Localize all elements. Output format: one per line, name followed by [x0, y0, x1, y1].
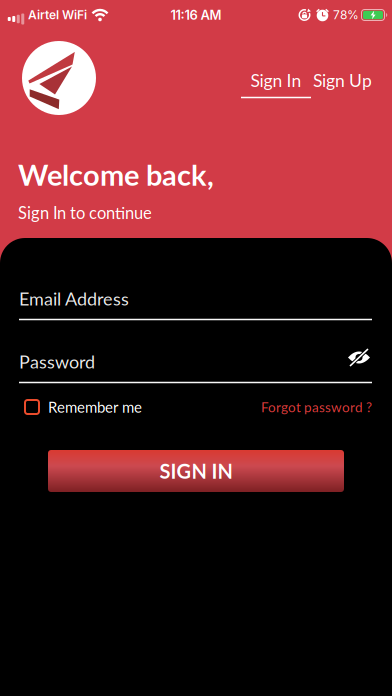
staticText: Sign In: [250, 70, 301, 91]
staticText: Sign In to continue: [18, 203, 152, 222]
staticText: 78%: [333, 8, 359, 22]
button[interactable]: SIGN IN: [48, 450, 344, 492]
button[interactable]: Remember me: [25, 398, 142, 416]
staticText: Email Address: [19, 288, 129, 309]
staticText: SIGN IN: [159, 459, 232, 483]
staticText: Forgot password ?: [261, 399, 372, 415]
button[interactable]: Show password: [347, 352, 371, 370]
staticText: Password: [19, 351, 95, 372]
button[interactable]: Forgot password ?: [261, 399, 372, 415]
staticText: Sign Up: [313, 70, 372, 91]
staticText: Welcome back,: [18, 157, 214, 192]
button[interactable]: Sign Up: [311, 70, 372, 98]
staticText: Remember me: [48, 398, 142, 416]
button[interactable]: Sign In: [241, 70, 311, 98]
staticText: Airtel WiFi: [28, 8, 87, 22]
staticText: 11:16 AM: [170, 7, 221, 23]
